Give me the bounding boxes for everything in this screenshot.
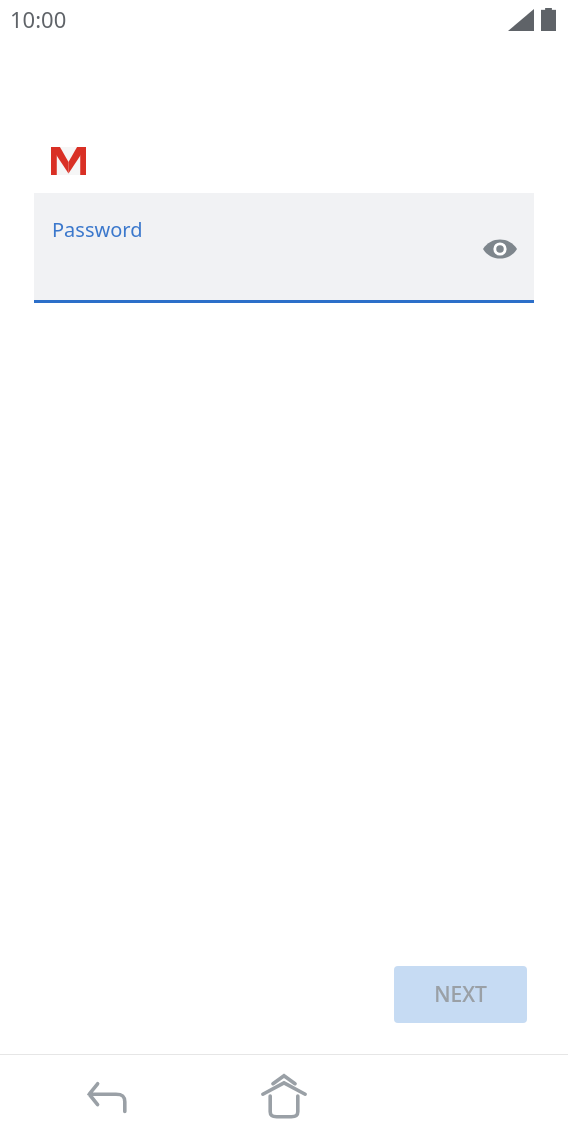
button[interactable]: Back: [78, 1066, 138, 1126]
staticText: NEXT: [434, 980, 487, 1009]
button[interactable]: Show password: [480, 229, 520, 269]
button[interactable]: NEXT: [394, 966, 527, 1023]
staticText: Password: [52, 216, 143, 243]
button[interactable]: Password: [34, 193, 534, 303]
staticText: 10:00: [10, 4, 67, 34]
button[interactable]: Home: [252, 1064, 316, 1128]
